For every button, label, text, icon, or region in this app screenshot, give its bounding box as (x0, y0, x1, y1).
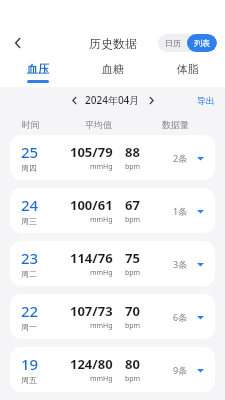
staticText: 75 (125, 249, 140, 267)
staticText: 血糖 (102, 62, 124, 76)
button[interactable]: Expand (193, 363, 207, 377)
button[interactable]: 25 (10, 135, 215, 180)
staticText: 平均值 (85, 119, 112, 130)
button[interactable]: 22 (10, 294, 215, 339)
staticText: 1条 (173, 205, 188, 217)
button[interactable]: 导出 (195, 93, 217, 108)
staticText: 列表 (194, 38, 210, 48)
staticText: mmHg (90, 321, 113, 331)
staticText: 3条 (173, 258, 188, 270)
staticText: 2024年04月 (85, 93, 140, 107)
staticText: 周三 (21, 216, 37, 226)
staticText: 107/73 (70, 302, 113, 320)
staticText: 体脂 (177, 62, 199, 76)
staticText: 周一 (21, 322, 37, 332)
button[interactable]: 血压 (0, 58, 75, 86)
staticText: bpm (125, 268, 141, 278)
button[interactable]: Expand (193, 257, 207, 271)
staticText: mmHg (90, 215, 113, 225)
button[interactable]: Expand (193, 310, 207, 324)
button[interactable]: Back (6, 31, 30, 55)
staticText: 数据量 (162, 119, 189, 130)
staticText: bpm (125, 162, 141, 172)
staticText: 100/61 (70, 196, 113, 214)
staticText: 时间 (22, 119, 40, 130)
button[interactable]: Next month (143, 92, 159, 108)
staticText: 2条 (173, 152, 188, 164)
staticText: 周四 (21, 163, 37, 173)
staticText: 70 (125, 302, 140, 320)
button[interactable]: Expand (193, 151, 207, 165)
staticText: bpm (125, 321, 141, 331)
staticText: mmHg (90, 162, 113, 172)
staticText: 日历 (165, 38, 181, 48)
staticText: 22 (21, 301, 39, 321)
button[interactable]: 列表 (187, 34, 217, 52)
staticText: mmHg (90, 374, 113, 384)
staticText: 114/76 (70, 249, 113, 267)
staticText: bpm (125, 215, 141, 225)
staticText: bpm (125, 374, 141, 384)
staticText: 6条 (173, 311, 188, 323)
button[interactable]: 23 (10, 241, 215, 286)
button[interactable]: 日历 (158, 34, 187, 52)
staticText: 历史数据 (89, 36, 137, 51)
staticText: 80 (125, 355, 140, 373)
button[interactable]: 19 (10, 347, 215, 392)
staticText: 血压 (27, 62, 49, 76)
staticText: 124/80 (70, 355, 113, 373)
button[interactable]: Expand (193, 204, 207, 218)
staticText: 105/79 (70, 143, 113, 161)
button[interactable]: Previous month (66, 92, 82, 108)
staticText: 19 (21, 354, 39, 374)
staticText: 周二 (21, 269, 37, 279)
staticText: 24 (21, 195, 39, 215)
staticText: 25 (21, 142, 39, 162)
staticText: 9条 (173, 364, 188, 376)
staticText: 周五 (21, 375, 37, 385)
staticText: 23 (21, 248, 39, 268)
button[interactable]: 24 (10, 188, 215, 233)
staticText: mmHg (90, 268, 113, 278)
staticText: 88 (125, 143, 140, 161)
button[interactable]: 血糖 (75, 58, 150, 86)
button[interactable]: 体脂 (150, 58, 225, 86)
staticText: 67 (125, 196, 140, 214)
staticText: 导出 (197, 95, 215, 106)
